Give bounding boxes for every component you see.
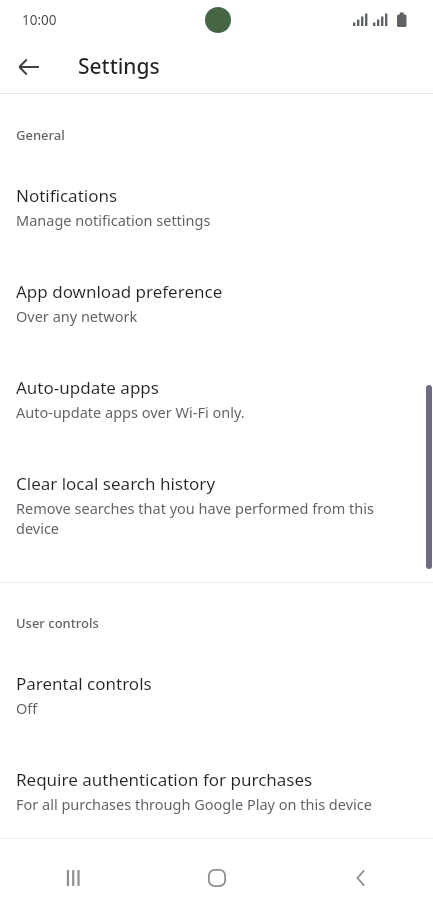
staticText: Clear local search history (16, 472, 216, 495)
staticText: Parental controls (16, 672, 152, 695)
button[interactable]: Require authentication for purchases (0, 718, 433, 814)
button[interactable]: Notifications (0, 144, 433, 230)
staticText: For all purchases through Google Play on… (16, 794, 372, 814)
staticText: Settings (78, 52, 160, 81)
staticText: Manage notification settings (16, 210, 211, 230)
button[interactable]: Back (289, 839, 433, 916)
staticText: Over any network (16, 306, 138, 326)
staticText: Auto-update apps over Wi-Fi only. (16, 402, 245, 422)
staticText: General (16, 126, 65, 144)
staticText: App download preference (16, 280, 223, 303)
staticText: Notifications (16, 184, 118, 207)
staticText: Off (16, 698, 38, 718)
staticText: User controls (16, 614, 99, 632)
staticText: 10:00 (22, 11, 57, 29)
button[interactable]: App download preference (0, 230, 433, 326)
button[interactable]: Auto-update apps (0, 326, 433, 422)
button[interactable]: Home (145, 839, 289, 916)
button[interactable]: Clear local search history (0, 422, 433, 538)
staticText: Require authentication for purchases (16, 768, 313, 791)
button[interactable]: Recent apps (0, 839, 145, 916)
staticText: Auto-update apps (16, 376, 159, 399)
button[interactable]: Back (6, 44, 51, 89)
button[interactable]: Parental controls (0, 632, 433, 718)
staticText: Remove searches that you have performed … (16, 498, 417, 538)
